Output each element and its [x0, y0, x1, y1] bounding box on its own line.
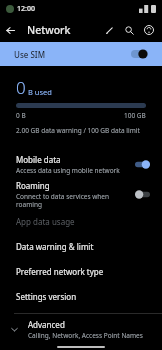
staticText: 0 B: [16, 111, 26, 120]
staticText: Advanced: [28, 319, 65, 330]
other: Expand advanced: [4, 319, 24, 339]
staticText: Use SIM: [14, 49, 46, 60]
button[interactable]: Use SIM: [0, 42, 162, 66]
button[interactable]: Data warning & limit: [0, 234, 162, 259]
button[interactable]: App data usage: [0, 209, 162, 234]
button[interactable]: Settings version: [0, 284, 162, 309]
button[interactable]: Edit: [99, 20, 119, 40]
staticText: Mobile data: [16, 154, 61, 165]
button[interactable]: Help: [139, 20, 159, 40]
staticText: Connect to data services when roaming: [16, 192, 129, 209]
staticText: Access data using mobile network: [16, 166, 120, 175]
staticText: Settings version: [16, 291, 77, 302]
button[interactable]: Preferred network type: [0, 259, 162, 284]
button[interactable]: Search: [119, 20, 139, 40]
button[interactable]: Mobile data: [0, 149, 162, 179]
staticText: Network: [27, 23, 71, 37]
button[interactable]: Expand advanced: [0, 314, 162, 344]
staticText: B used: [28, 87, 52, 97]
staticText: Data warning & limit: [16, 241, 94, 252]
staticText: 0: [16, 76, 26, 99]
button[interactable]: Roaming: [0, 179, 162, 209]
staticText: Roaming: [16, 180, 50, 191]
staticText: 12:00: [17, 4, 35, 14]
staticText: Calling, Network, Access Point Names: [28, 331, 143, 340]
staticText: 2.00 GB data warning / 100 GB data limit: [16, 126, 140, 135]
staticText: Preferred network type: [16, 266, 104, 277]
staticText: App data usage: [16, 216, 75, 227]
staticText: 100 GB: [124, 111, 146, 120]
button[interactable]: Back: [0, 20, 20, 40]
